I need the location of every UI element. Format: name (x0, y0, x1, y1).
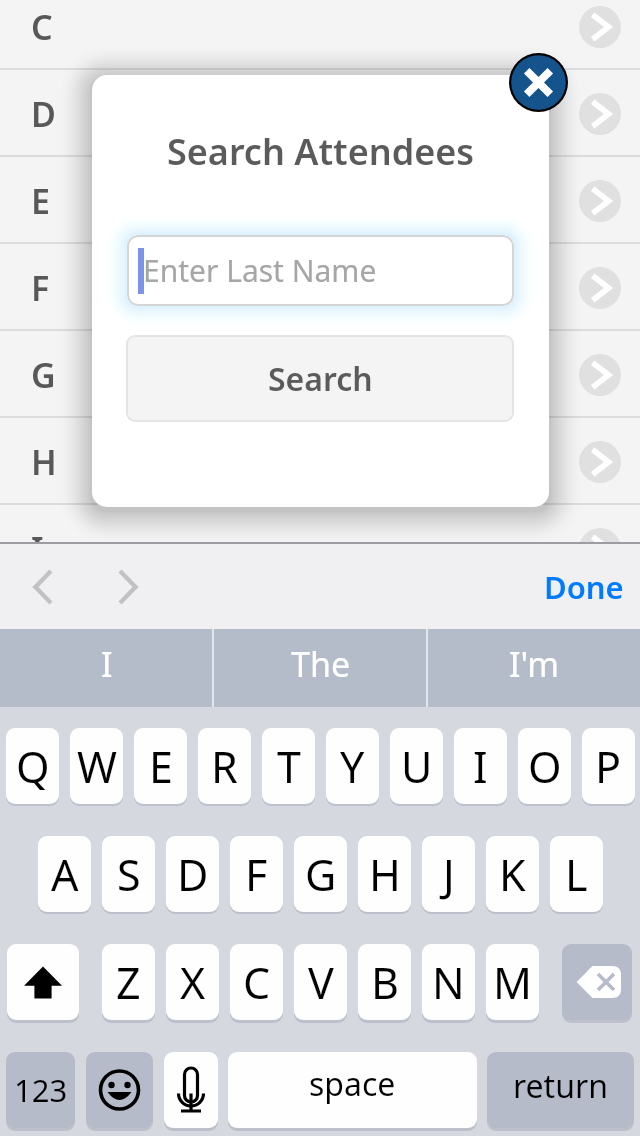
button[interactable]: Open section C (579, 6, 621, 48)
button[interactable]: Open section I (579, 528, 621, 570)
button[interactable]: Q (6, 728, 59, 804)
button[interactable]: O (518, 728, 571, 804)
staticText: Z (116, 953, 141, 1012)
button[interactable]: H (358, 836, 411, 912)
staticText: F (31, 265, 50, 311)
button[interactable]: Z (102, 944, 155, 1020)
button[interactable]: Y (326, 728, 379, 804)
staticText: U (401, 737, 433, 796)
button[interactable]: The (214, 629, 427, 707)
staticText: W (77, 737, 117, 796)
button[interactable]: Open section F (579, 267, 621, 309)
button[interactable]: Previous field (16, 560, 70, 614)
button[interactable]: E (0, 157, 640, 244)
button[interactable]: R (198, 728, 251, 804)
button[interactable]: 123 (6, 1052, 75, 1128)
staticText: I (31, 526, 44, 572)
button[interactable]: D (0, 70, 640, 157)
staticText: A (51, 845, 79, 904)
button[interactable]: N (422, 944, 475, 1020)
button[interactable]: B (358, 944, 411, 1020)
staticText: H (31, 439, 57, 485)
button[interactable]: S (102, 836, 155, 912)
staticText: I'm (509, 641, 559, 687)
staticText: N (432, 953, 465, 1012)
button[interactable]: I (0, 629, 214, 707)
staticText: P (595, 737, 622, 796)
button[interactable]: I (0, 505, 640, 592)
button[interactable]: Search (126, 335, 514, 422)
staticText: Search (268, 357, 373, 401)
staticText: return (513, 1064, 608, 1108)
staticText: Y (340, 737, 365, 796)
button[interactable]: Dictation (164, 1052, 218, 1128)
staticText: The (291, 641, 351, 687)
button[interactable]: V (294, 944, 347, 1020)
button[interactable]: K (486, 836, 539, 912)
staticText: D (177, 845, 209, 904)
button[interactable]: C (230, 944, 283, 1020)
staticText: Enter Last Name (143, 250, 377, 291)
button[interactable]: A (38, 836, 91, 912)
staticText: 123 (14, 1069, 68, 1111)
button[interactable]: Close (509, 53, 568, 112)
staticText: L (565, 845, 588, 904)
button[interactable]: H (0, 418, 640, 505)
staticText: G (31, 352, 56, 398)
staticText: D (31, 91, 56, 137)
staticText: O (528, 737, 562, 796)
button[interactable]: X (166, 944, 219, 1020)
staticText: T (277, 737, 301, 796)
button[interactable]: Next field (101, 560, 155, 614)
staticText: K (499, 845, 526, 904)
button[interactable]: Open section E (579, 180, 621, 222)
button[interactable]: Enter Last Name (127, 235, 514, 306)
button[interactable]: G (294, 836, 347, 912)
staticText: S (117, 845, 141, 904)
staticText: E (31, 178, 50, 224)
staticText: Done (544, 566, 624, 608)
staticText: B (371, 953, 399, 1012)
button[interactable]: I (454, 728, 507, 804)
staticText: F (245, 845, 268, 904)
staticText: I (101, 641, 113, 687)
button[interactable]: D (166, 836, 219, 912)
button[interactable]: F (230, 836, 283, 912)
button[interactable]: I'm (427, 629, 640, 707)
button[interactable]: C (0, 0, 640, 70)
staticText: space (309, 1062, 396, 1106)
staticText: V (308, 953, 334, 1012)
button[interactable]: J (422, 836, 475, 912)
staticText: M (493, 953, 533, 1012)
staticText: H (369, 845, 401, 904)
button[interactable]: T (262, 728, 315, 804)
button[interactable]: Backspace (562, 944, 632, 1020)
staticText: Search Attendees (167, 127, 475, 176)
button[interactable]: Done (544, 566, 624, 608)
staticText: J (443, 845, 455, 904)
staticText: Q (16, 737, 50, 796)
button[interactable]: Open section G (579, 354, 621, 396)
button[interactable]: Open section D (579, 93, 621, 135)
button[interactable]: F (0, 244, 640, 331)
staticText: C (31, 4, 53, 50)
button[interactable]: L (550, 836, 603, 912)
button[interactable]: Emoji (86, 1052, 153, 1128)
button[interactable]: U (390, 728, 443, 804)
button[interactable]: space (228, 1052, 477, 1128)
staticText: R (211, 737, 238, 796)
staticText: G (305, 845, 337, 904)
staticText: C (243, 953, 271, 1012)
staticText: E (149, 737, 173, 796)
button[interactable]: P (582, 728, 635, 804)
button[interactable]: W (70, 728, 123, 804)
button[interactable]: E (134, 728, 187, 804)
staticText: X (180, 953, 206, 1012)
button[interactable]: Shift (7, 944, 79, 1020)
button[interactable]: M (486, 944, 539, 1020)
button[interactable]: G (0, 331, 640, 418)
button[interactable]: return (487, 1052, 634, 1128)
button[interactable]: Open section H (579, 441, 621, 483)
staticText: I (473, 737, 488, 796)
